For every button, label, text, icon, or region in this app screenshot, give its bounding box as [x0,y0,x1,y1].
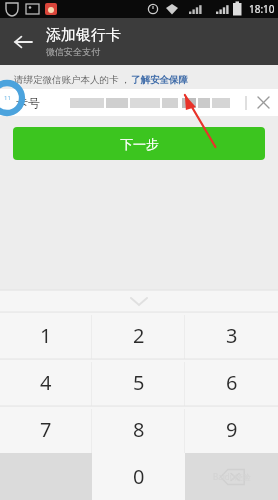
staticText: 卡号 [16,95,40,110]
staticText: 2 [133,322,145,349]
staticText: 8 [133,416,145,443]
button[interactable]: 卡号 [0,89,278,116]
staticText: 3 [226,322,238,349]
button[interactable]: 了解安全保障 [131,74,188,86]
staticText: 18:10 [249,2,275,16]
button[interactable]: 9 [185,406,278,453]
staticText: 微信安全支付 [46,46,100,57]
button[interactable]: 下一步 [13,127,265,160]
staticText: 6 [226,369,238,396]
button[interactable]: 2 [92,312,185,359]
staticText: 了解安全保障 [131,74,188,86]
staticText: 0 [133,463,145,490]
staticText: Baidu经验 [213,471,251,482]
button[interactable]: 8 [92,406,185,453]
button[interactable]: 3 [185,312,278,359]
staticText: 5 [133,369,145,396]
button[interactable]: 4 [0,359,92,406]
button[interactable]: 1 [0,312,92,359]
staticText: 下一步 [120,136,159,152]
staticText: 9 [226,416,238,443]
staticText: 1 [40,322,52,349]
staticText: 7 [40,416,52,443]
button[interactable]: 0 [92,453,185,500]
staticText: 11 [4,94,11,102]
staticText: 添加银行卡 [46,26,121,45]
button[interactable]: 5 [92,359,185,406]
staticText: 4 [40,369,52,396]
button[interactable]: 6 [185,359,278,406]
button[interactable]: Hide keyboard [0,290,278,312]
button[interactable]: Back [0,18,46,65]
button[interactable]: 7 [0,406,92,453]
button[interactable]: Clear [248,89,278,116]
staticText: 请绑定微信账户本人的卡 ， [14,73,131,86]
